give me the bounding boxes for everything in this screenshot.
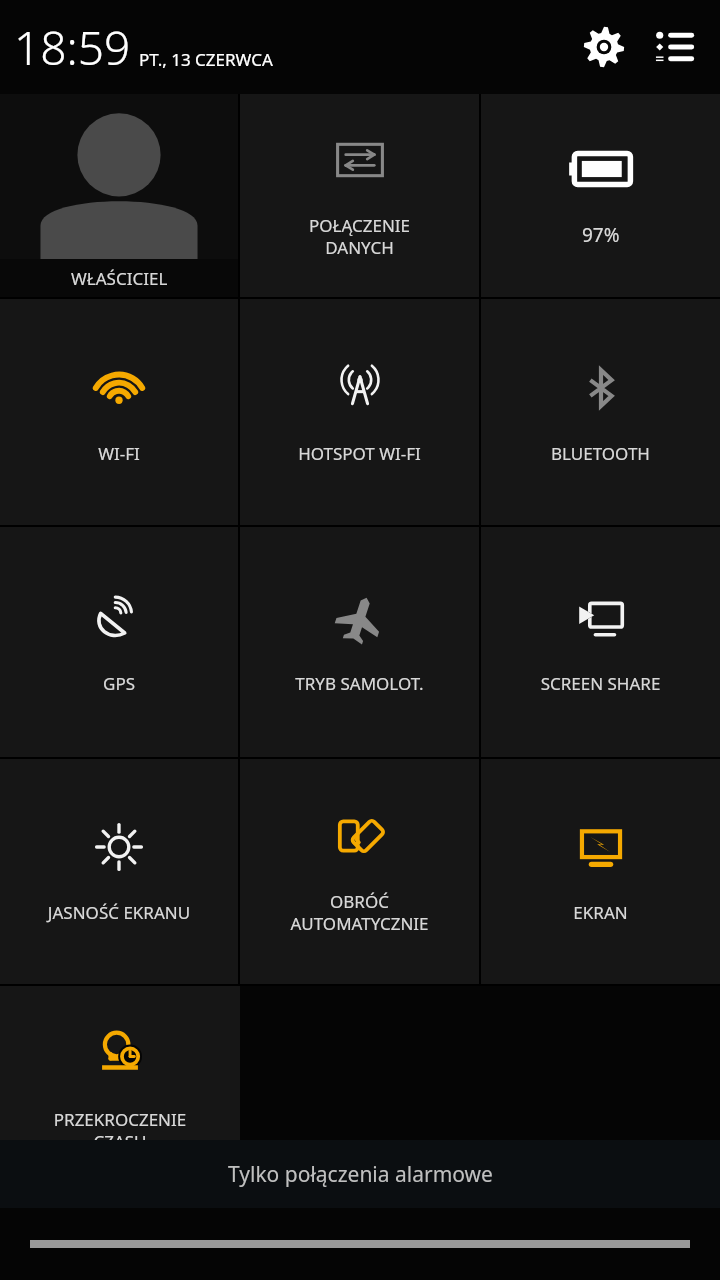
staticText: POŁĄCZENIE DANYCH <box>244 214 475 259</box>
staticText: WŁAŚCICIEL <box>71 267 168 290</box>
staticText: WI-FI <box>4 442 234 465</box>
button[interactable]: 97% <box>481 94 720 297</box>
button[interactable]: Settings <box>576 19 632 75</box>
button[interactable]: JASNOŚĆ EKRANU <box>0 759 238 984</box>
button[interactable]: POŁĄCZENIE DANYCH <box>240 94 479 297</box>
staticText: GPS <box>4 672 234 695</box>
button[interactable]: WŁAŚCICIEL <box>0 94 238 297</box>
staticText: BLUETOOTH <box>485 442 716 465</box>
button[interactable]: OBRÓĆ AUTOMATYCZNIE <box>240 759 479 984</box>
staticText: 97% <box>582 222 620 248</box>
staticText: Tylko połączenia alarmowe <box>228 1160 493 1189</box>
button[interactable]: HOTSPOT WI-FI <box>240 299 479 525</box>
button[interactable]: Close panel <box>0 1208 720 1280</box>
button[interactable]: TRYB SAMOLOT. <box>240 527 479 757</box>
staticText: SCREEN SHARE <box>485 672 716 695</box>
staticText: PT., 13 CZERWCA <box>139 48 273 71</box>
staticText: TRYB SAMOLOT. <box>244 672 475 695</box>
staticText: PRZEKROCZENIE CZASU <box>4 1108 236 1153</box>
staticText: EKRAN <box>485 901 716 924</box>
button[interactable]: WI-FI <box>0 299 238 525</box>
button[interactable]: GPS <box>0 527 238 757</box>
staticText: 18:59 <box>14 16 131 79</box>
button[interactable]: EKRAN <box>481 759 720 984</box>
button[interactable]: Edit quick settings <box>646 19 702 75</box>
button[interactable]: PRZEKROCZENIE CZASU <box>0 986 240 1166</box>
button[interactable]: SCREEN SHARE <box>481 527 720 757</box>
button[interactable]: BLUETOOTH <box>481 299 720 525</box>
staticText: HOTSPOT WI-FI <box>244 442 475 465</box>
staticText: OBRÓĆ AUTOMATYCZNIE <box>244 890 475 935</box>
staticText: JASNOŚĆ EKRANU <box>4 901 234 924</box>
